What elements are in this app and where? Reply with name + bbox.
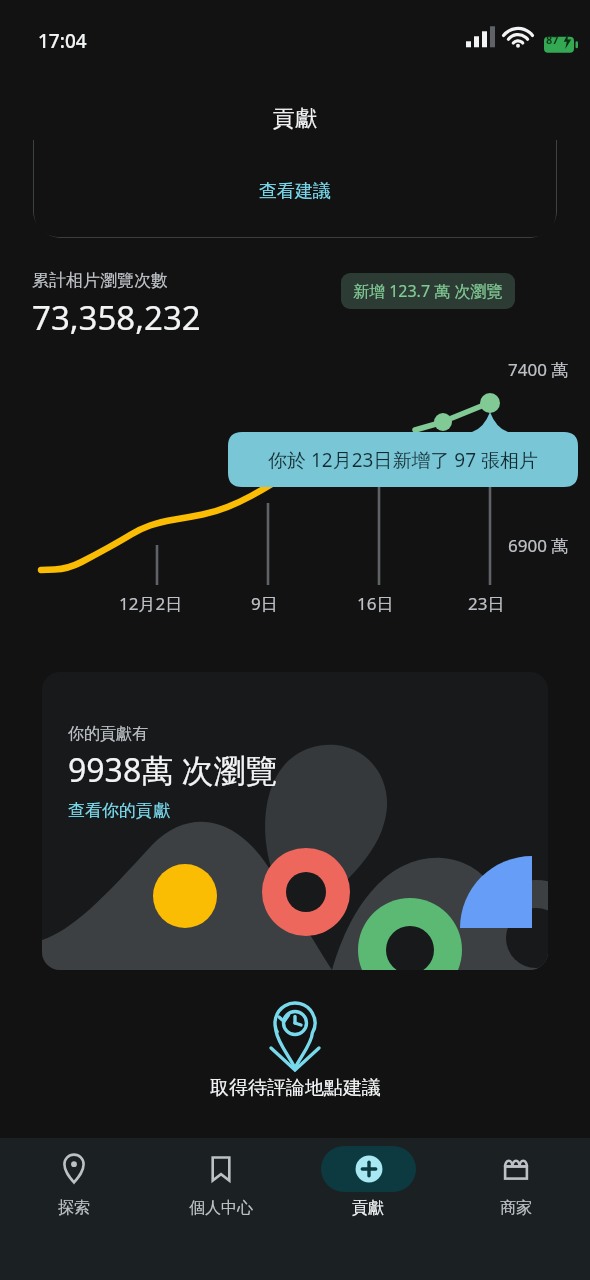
staticText: 個人中心 [189,1198,253,1218]
button[interactable]: 商家 [442,1138,590,1218]
staticText: 探索 [58,1198,90,1218]
staticText: 87 [546,32,559,47]
staticText: 9日 [251,592,278,615]
staticText: 累計相片瀏覽次數 [32,270,168,291]
button[interactable]: 你的貢獻有 [42,672,548,970]
button[interactable]: 查看建議 [33,140,557,238]
staticText: 你的貢獻有 [68,724,148,744]
staticText: 你於 12月23日新增了 97 張相片 [268,447,539,473]
staticText: 6900 萬 [508,534,569,557]
button[interactable]: 查看你的貢獻 [68,800,170,821]
staticText: 16日 [357,592,394,615]
staticText: 17:04 [38,28,87,54]
button[interactable]: 取得待評論地點建議 [0,1000,590,1100]
button[interactable]: 探索 [0,1138,147,1218]
staticText: 7400 萬 [508,358,569,381]
button[interactable]: 個人中心 [147,1138,294,1218]
button[interactable]: 貢獻 [294,1138,442,1218]
staticText: 貢獻 [352,1198,384,1218]
staticText: 取得待評論地點建議 [210,1076,381,1100]
staticText: 貢獻 [0,105,590,133]
staticText: 新增 123.7 萬 次瀏覽 [353,280,503,302]
staticText: 23日 [468,592,505,615]
staticText: 9938萬 次瀏覽 [68,748,278,792]
staticText: 73,358,232 [32,295,201,340]
button[interactable]: 新增 123.7 萬 次瀏覽 [341,273,515,309]
staticText: 商家 [500,1198,532,1218]
staticText: 查看建議 [259,180,331,203]
staticText: 12月2日 [119,592,183,615]
